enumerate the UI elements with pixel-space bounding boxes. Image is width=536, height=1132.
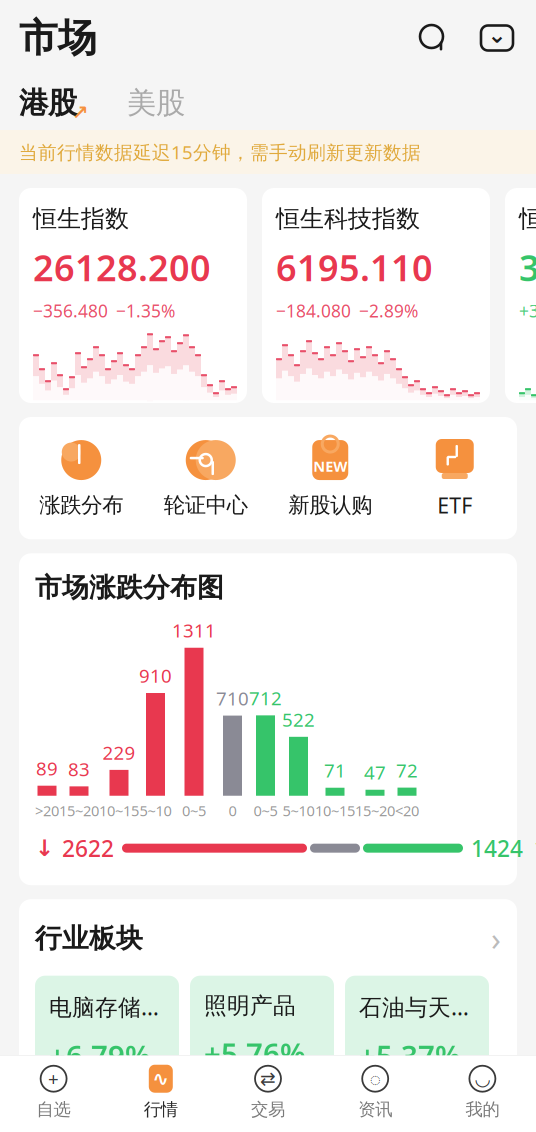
staticText: 5~10 bbox=[282, 801, 314, 820]
button[interactable]: 消息 bbox=[477, 18, 517, 58]
staticText: 229 bbox=[102, 740, 135, 765]
staticText: 恒生香港中资 bbox=[519, 204, 536, 233]
staticText: 0 bbox=[228, 801, 236, 820]
staticText: 2622 bbox=[62, 833, 114, 863]
button[interactable]: ∿ bbox=[107, 1064, 214, 1120]
button[interactable]: 当前行情数据延迟15分钟，需手动刷新更新数据 bbox=[0, 130, 536, 174]
staticText: <20 bbox=[395, 801, 419, 820]
staticText: +6.79% bbox=[49, 1036, 151, 1075]
staticText: 5~10 bbox=[139, 801, 171, 820]
staticText: NEW bbox=[313, 456, 347, 476]
button[interactable]: + bbox=[0, 1064, 107, 1120]
staticText: 522 bbox=[282, 707, 315, 732]
staticText: −356.480 bbox=[33, 299, 108, 322]
button[interactable]: 恒生香港中资 bbox=[505, 188, 536, 403]
button[interactable]: ⇄ bbox=[214, 1064, 322, 1120]
staticText: 1424 bbox=[471, 833, 523, 863]
button[interactable]: 石油与天… bbox=[345, 976, 489, 1084]
button[interactable]: 涨跌分布 bbox=[19, 438, 143, 518]
staticText: 石油与天… bbox=[359, 992, 469, 1022]
staticText: ∿ bbox=[152, 1067, 169, 1090]
staticText: 资讯 bbox=[358, 1099, 392, 1120]
staticText: 我的 bbox=[465, 1099, 499, 1120]
staticText: 83 bbox=[68, 757, 90, 781]
staticText: ⇄ bbox=[260, 1068, 276, 1089]
staticText: +5.76% bbox=[204, 1033, 306, 1072]
staticText: −184.080 bbox=[276, 299, 351, 322]
button[interactable]: 恒生指数 bbox=[19, 188, 247, 403]
staticText: 3996.020 bbox=[519, 243, 536, 291]
staticText: 涨跌分布 bbox=[39, 492, 123, 518]
staticText: 照明产品 bbox=[204, 992, 296, 1019]
button[interactable]: 电脑存储… bbox=[35, 976, 179, 1084]
button[interactable]: 轮证中心 bbox=[143, 438, 268, 518]
staticText: 市场涨跌分布图 bbox=[35, 571, 224, 604]
staticText: 910 bbox=[139, 663, 172, 688]
staticText: ↑ bbox=[531, 835, 536, 861]
staticText: 89 bbox=[36, 756, 58, 781]
staticText: 行业板块 bbox=[35, 922, 143, 955]
button[interactable]: 照明产品 bbox=[190, 976, 334, 1084]
staticText: › bbox=[491, 917, 501, 960]
staticText: 15~20 bbox=[355, 801, 395, 820]
staticText: 15~20 bbox=[59, 801, 99, 820]
staticText: 恒生科技指数 bbox=[276, 204, 420, 233]
staticText: 26128.200 bbox=[33, 243, 211, 291]
staticText: ◡ bbox=[474, 1068, 490, 1089]
staticText: 1311 bbox=[172, 618, 216, 643]
staticText: −1.35% bbox=[116, 299, 175, 322]
button[interactable]: 搜索 bbox=[413, 18, 453, 58]
staticText: 美股 bbox=[127, 85, 185, 121]
staticText: 710 bbox=[216, 686, 249, 711]
staticText: 市场 bbox=[19, 14, 97, 62]
staticText: 电脑存储… bbox=[49, 992, 159, 1022]
staticText: 6195.110 bbox=[276, 243, 433, 291]
staticText: ↗ bbox=[72, 101, 89, 124]
staticText: ◌ bbox=[370, 1066, 381, 1091]
button[interactable]: 行业板块 bbox=[35, 917, 501, 960]
staticText: ⌄ bbox=[487, 22, 506, 48]
staticText: 10~15 bbox=[315, 801, 355, 820]
staticText: ↓ bbox=[35, 835, 54, 861]
staticText: +3.480 bbox=[519, 299, 536, 322]
staticText: 新股认购 bbox=[288, 492, 372, 518]
staticText: 交易 bbox=[251, 1099, 285, 1120]
staticText: +5.37% bbox=[359, 1036, 461, 1075]
button[interactable]: ETF bbox=[392, 437, 517, 519]
button[interactable]: 恒生科技指数 bbox=[262, 188, 490, 403]
staticText: 712 bbox=[249, 686, 282, 710]
staticText: 47 bbox=[364, 760, 386, 785]
staticText: 港股 bbox=[19, 85, 77, 121]
staticText: 轮证中心 bbox=[164, 492, 248, 518]
button[interactable]: ◡ bbox=[429, 1064, 536, 1120]
button[interactable]: NEW bbox=[268, 438, 392, 518]
staticText: 72 bbox=[396, 758, 418, 783]
staticText: 71 bbox=[324, 758, 346, 783]
staticText: >20 bbox=[35, 801, 59, 820]
staticText: 0~5 bbox=[253, 801, 277, 820]
button[interactable]: ◌ bbox=[322, 1064, 429, 1120]
staticText: −2.89% bbox=[359, 299, 418, 322]
staticText: 恒生指数 bbox=[33, 204, 129, 233]
staticText: 行情 bbox=[144, 1099, 178, 1120]
staticText: ETF bbox=[437, 491, 472, 519]
staticText: 10~15 bbox=[99, 801, 139, 820]
staticText: 0~5 bbox=[182, 801, 206, 820]
staticText: 自选 bbox=[37, 1099, 71, 1120]
staticText: + bbox=[48, 1066, 59, 1091]
staticText: 当前行情数据延迟15分钟，需手动刷新更新数据 bbox=[19, 140, 421, 164]
button[interactable]: 美股 bbox=[127, 85, 185, 121]
button[interactable]: 港股 bbox=[19, 85, 91, 121]
